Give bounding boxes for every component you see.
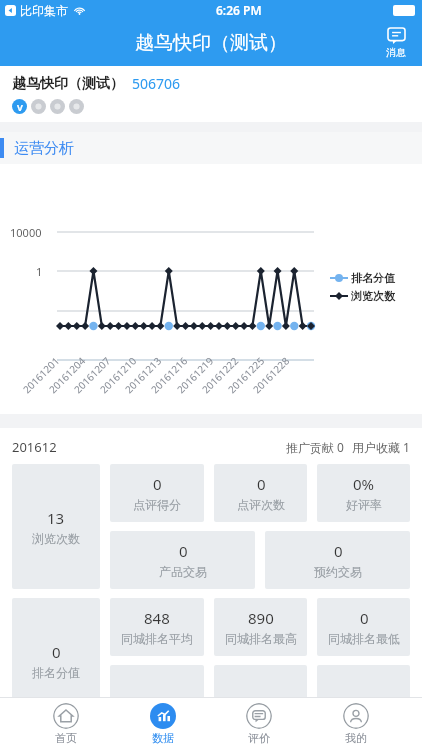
- button[interactable]: 0%: [317, 464, 410, 522]
- staticText: 20161204: [46, 354, 88, 396]
- button[interactable]: 13: [12, 464, 100, 589]
- staticText: 浏览次数: [32, 531, 80, 546]
- button[interactable]: 0: [12, 598, 100, 723]
- staticText: 0: [52, 642, 61, 662]
- button[interactable]: 0: [110, 464, 204, 522]
- staticText: 同城排名最高: [225, 631, 297, 646]
- button[interactable]: 0: [214, 464, 307, 522]
- staticText: 首页: [55, 731, 77, 745]
- button[interactable]: 首页: [35, 700, 97, 748]
- staticText: 848: [144, 608, 170, 628]
- staticText: 0: [179, 541, 188, 561]
- staticText: 0: [257, 474, 266, 494]
- staticText: 比印集市: [20, 3, 68, 18]
- staticText: 越鸟快印（测试）: [135, 31, 287, 55]
- staticText: 6:26 PM: [216, 2, 262, 18]
- staticText: 产品交易: [159, 564, 207, 579]
- button[interactable]: [214, 665, 307, 723]
- staticText: 20161210: [97, 354, 139, 396]
- button[interactable]: 越鸟快印（测试）: [0, 66, 422, 122]
- button[interactable]: 数据: [132, 700, 194, 748]
- staticText: 运营分析: [14, 139, 74, 158]
- button[interactable]: 0: [265, 531, 410, 589]
- staticText: 1: [36, 264, 43, 279]
- staticText: 同城排名平均: [121, 631, 193, 646]
- staticText: 排名分值: [351, 271, 395, 285]
- staticText: 20161216: [148, 354, 190, 396]
- staticText: V: [17, 101, 23, 113]
- button[interactable]: [110, 665, 204, 723]
- staticText: 0: [334, 541, 343, 561]
- staticText: 0%: [353, 474, 375, 494]
- staticText: 20161219: [174, 354, 216, 396]
- staticText: 浏览次数: [351, 289, 395, 303]
- button[interactable]: 我的: [325, 700, 387, 748]
- staticText: 0: [360, 608, 369, 628]
- staticText: 13: [47, 508, 65, 528]
- staticText: 20161207: [71, 354, 113, 396]
- staticText: 排名分值: [32, 665, 80, 680]
- button[interactable]: 890: [214, 598, 307, 656]
- staticText: 20161222: [199, 354, 241, 396]
- button[interactable]: 消息: [382, 26, 410, 61]
- staticText: 用户收藏 1: [352, 439, 410, 455]
- button[interactable]: 0: [110, 531, 255, 589]
- button[interactable]: [317, 665, 410, 723]
- staticText: 0: [153, 474, 162, 494]
- staticText: 我的: [345, 731, 367, 745]
- staticText: 890: [248, 608, 274, 628]
- staticText: 数据: [152, 731, 174, 745]
- staticText: 评价: [248, 731, 270, 745]
- staticText: 201612: [12, 438, 57, 456]
- staticText: 点评次数: [237, 497, 285, 512]
- staticText: 消息: [386, 46, 406, 59]
- staticText: 20161201: [20, 354, 62, 396]
- staticText: 20161228: [250, 354, 292, 396]
- button[interactable]: 848: [110, 598, 204, 656]
- staticText: 越鸟快印（测试）: [12, 75, 124, 93]
- staticText: 10000: [10, 225, 42, 240]
- button[interactable]: 0: [317, 598, 410, 656]
- staticText: 推广贡献 0: [286, 439, 344, 455]
- staticText: 20161225: [225, 354, 267, 396]
- staticText: 点评得分: [133, 497, 181, 512]
- staticText: 同城排名最低: [328, 631, 400, 646]
- button[interactable]: 评价: [228, 700, 290, 748]
- staticText: 预约交易: [314, 564, 362, 579]
- staticText: 好评率: [346, 497, 382, 512]
- staticText: 20161213: [122, 354, 164, 396]
- staticText: 506706: [132, 74, 181, 93]
